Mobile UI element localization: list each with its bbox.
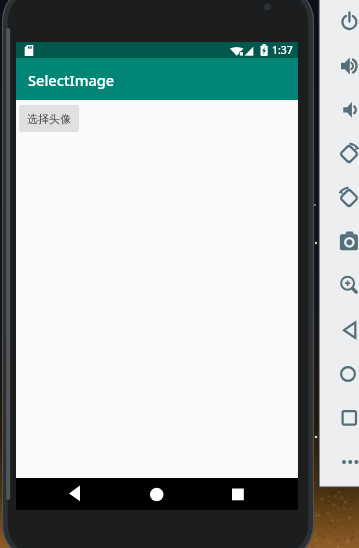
button[interactable] [318,396,359,440]
button[interactable] [318,0,359,44]
button[interactable] [318,44,359,88]
staticText: 选择头像 [27,112,71,126]
button[interactable] [318,352,359,396]
staticText: 1:37 [272,43,293,57]
button[interactable] [16,478,110,510]
button[interactable] [318,176,359,220]
button[interactable] [318,440,359,484]
button[interactable] [318,220,359,264]
button[interactable] [204,478,298,510]
button[interactable] [318,132,359,176]
staticText: SelectImage [28,70,115,90]
button[interactable]: 选择头像 [19,105,79,132]
button[interactable] [318,88,359,132]
button[interactable] [318,264,359,308]
button[interactable] [110,478,204,510]
button[interactable] [318,308,359,352]
